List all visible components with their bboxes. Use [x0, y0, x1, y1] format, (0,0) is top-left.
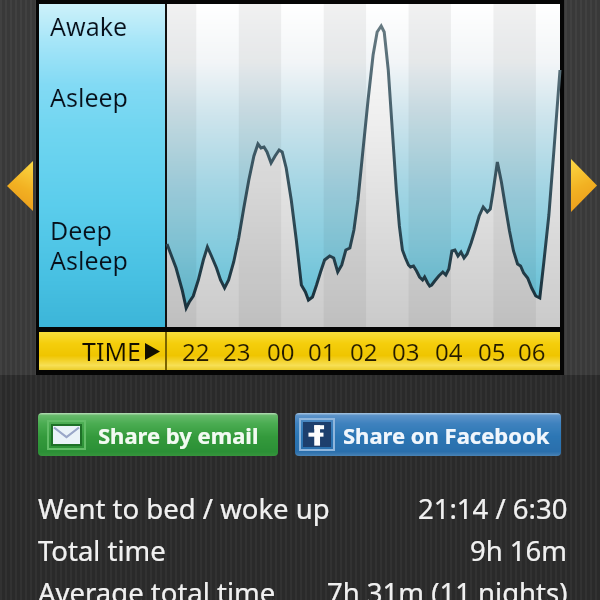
button[interactable]: Share on Facebook — [295, 413, 561, 456]
staticText: 02 — [350, 335, 378, 368]
staticText: Deep Asleep — [50, 213, 128, 278]
staticText: 00 — [267, 335, 295, 368]
button[interactable]: Previous night — [7, 161, 33, 211]
staticText: TIME — [82, 334, 141, 368]
staticText: Share on Facebook — [343, 420, 550, 450]
button[interactable]: Average total time — [38, 571, 568, 600]
button[interactable]: Awake — [36, 0, 564, 375]
staticText: 04 — [435, 335, 463, 368]
button[interactable]: Share by email — [38, 413, 278, 456]
staticText: Asleep — [50, 80, 128, 114]
staticText: 23 — [223, 335, 251, 368]
button[interactable]: Total time — [38, 529, 568, 571]
staticText: 22 — [182, 335, 210, 368]
button[interactable]: Went to bed / woke up — [38, 487, 568, 529]
staticText: Average total time — [38, 574, 276, 600]
staticText: Share by email — [98, 420, 259, 450]
staticText: Went to bed / woke up — [38, 490, 330, 527]
staticText: 05 — [478, 335, 506, 368]
button[interactable]: Next night — [571, 159, 597, 212]
staticText: 03 — [392, 335, 420, 368]
staticText: 01 — [308, 335, 336, 368]
staticText: 9h 16m — [470, 532, 568, 569]
staticText: Total time — [38, 532, 166, 569]
staticText: 21:14 / 6:30 — [418, 490, 568, 527]
staticText: Awake — [50, 9, 128, 43]
staticText: 7h 31m (11 nights) — [327, 574, 568, 600]
staticText: 06 — [518, 335, 546, 368]
